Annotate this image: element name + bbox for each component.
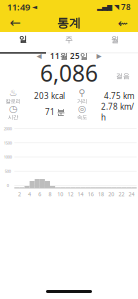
button[interactable]: Next day [94,51,104,61]
staticText: ◷ [9,103,17,114]
staticText: ▂▄▆ [97,3,112,11]
staticText: 4.75 km [104,91,134,101]
staticText: 16 [88,191,94,198]
staticText: 시간 [8,114,18,121]
button[interactable]: Previous day [34,51,44,61]
staticText: 월 [111,35,119,45]
staticText: 24 [129,191,135,198]
staticText: ▶ [96,52,101,60]
staticText: 10 [57,191,63,198]
staticText: ◎ [78,103,86,114]
staticText: 6 [38,191,41,198]
staticText: 203 kcal [34,91,65,101]
staticText: 2000 [4,126,12,131]
staticText: ← [9,15,20,30]
staticText: 1500 [4,140,12,145]
staticText: ◥ [114,3,119,11]
staticText: 칼로리 [5,98,20,105]
staticText: 속도 [77,114,87,121]
staticText: 14 [78,191,84,198]
staticText: 걸음 [116,72,130,80]
button[interactable]: 일 [0,32,46,48]
staticText: 11월 25일 [50,51,88,61]
button[interactable]: 월 [92,32,138,48]
staticText: 일 [19,34,27,44]
staticText: 8 [48,191,51,198]
staticText: 18 [98,191,104,198]
staticText: 2 [18,191,21,198]
staticText: 12 [67,191,73,198]
staticText: 통계 [57,16,81,30]
staticText: 0 [7,183,9,188]
staticText: 71 분 [45,107,65,117]
staticText: 20 [108,191,114,198]
staticText: 주 [65,35,73,45]
button[interactable]: Back [4,14,26,32]
staticText: ⇜ [118,16,128,30]
button[interactable]: 주 [46,32,92,48]
staticText: 거리 [77,98,87,105]
button[interactable]: Share [112,14,134,32]
staticText: ♨ [9,87,17,98]
staticText: 22 [118,191,124,198]
staticText: 4 [28,191,31,198]
staticText: 11:49 [7,1,30,13]
staticText: ◀ [36,52,41,60]
staticText: 78 [121,2,131,12]
staticText: 500 [5,168,11,174]
staticText: 2.78 km/h [101,101,134,123]
staticText: ◄ [32,3,37,11]
staticText: 1000 [4,154,12,160]
staticText: ⚲ [78,87,85,98]
staticText: 6,086 [40,58,98,88]
